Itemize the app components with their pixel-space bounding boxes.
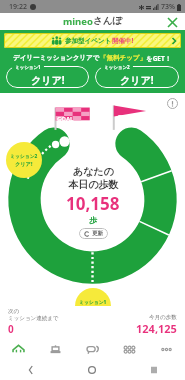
staticText: 10,158 (66, 192, 120, 215)
button[interactable]: ミッション1 (75, 288, 111, 324)
staticText: ミッション2 (10, 153, 38, 160)
button[interactable]: Info (164, 95, 180, 111)
button[interactable]: 更新 (79, 228, 108, 239)
button[interactable]: Close (165, 15, 179, 29)
staticText: 歩 (89, 215, 97, 225)
staticText: あなたの (73, 165, 114, 178)
button[interactable]: クリア! (95, 66, 179, 88)
staticText: 今月の歩数 (149, 314, 177, 321)
button[interactable]: Chat (74, 338, 111, 360)
button[interactable]: クリア! (6, 66, 89, 88)
button[interactable]: 参加型イベント (4, 33, 181, 48)
staticText: 「無料チップ」 (100, 54, 146, 62)
staticText: 開催中! (112, 36, 134, 45)
staticText: GOAL (57, 115, 74, 123)
staticText: ミッション1 (79, 299, 107, 306)
staticText: 次の (8, 308, 20, 315)
staticText: mineo (63, 15, 93, 28)
staticText: ミッション1 (15, 64, 41, 70)
staticText: START (118, 113, 136, 121)
staticText: ミッション連続まで (8, 315, 59, 322)
staticText: さんぽ (93, 15, 123, 27)
staticText: ミッション2 (104, 64, 130, 70)
staticText: 73% (161, 2, 175, 12)
button[interactable]: More (148, 338, 185, 360)
staticText: 参加型イベント (65, 37, 112, 45)
staticText: デイリーミッションクリアで (13, 54, 100, 62)
button[interactable]: Stamp (37, 338, 74, 360)
staticText: クリア! (15, 160, 33, 167)
staticText: 124,125 (136, 321, 177, 336)
button[interactable]: Grid (111, 338, 148, 360)
staticText: クリア! (31, 73, 65, 87)
staticText: 0 (8, 322, 14, 336)
staticText: 本日の歩数 (68, 178, 119, 191)
staticText: をGET！ (146, 54, 172, 63)
button[interactable]: Home (0, 338, 37, 360)
staticText: 19:22 (9, 2, 27, 12)
staticText: クリア! (120, 73, 154, 87)
staticText: 更新 (92, 230, 103, 237)
button[interactable]: ミッション2 (6, 142, 42, 178)
